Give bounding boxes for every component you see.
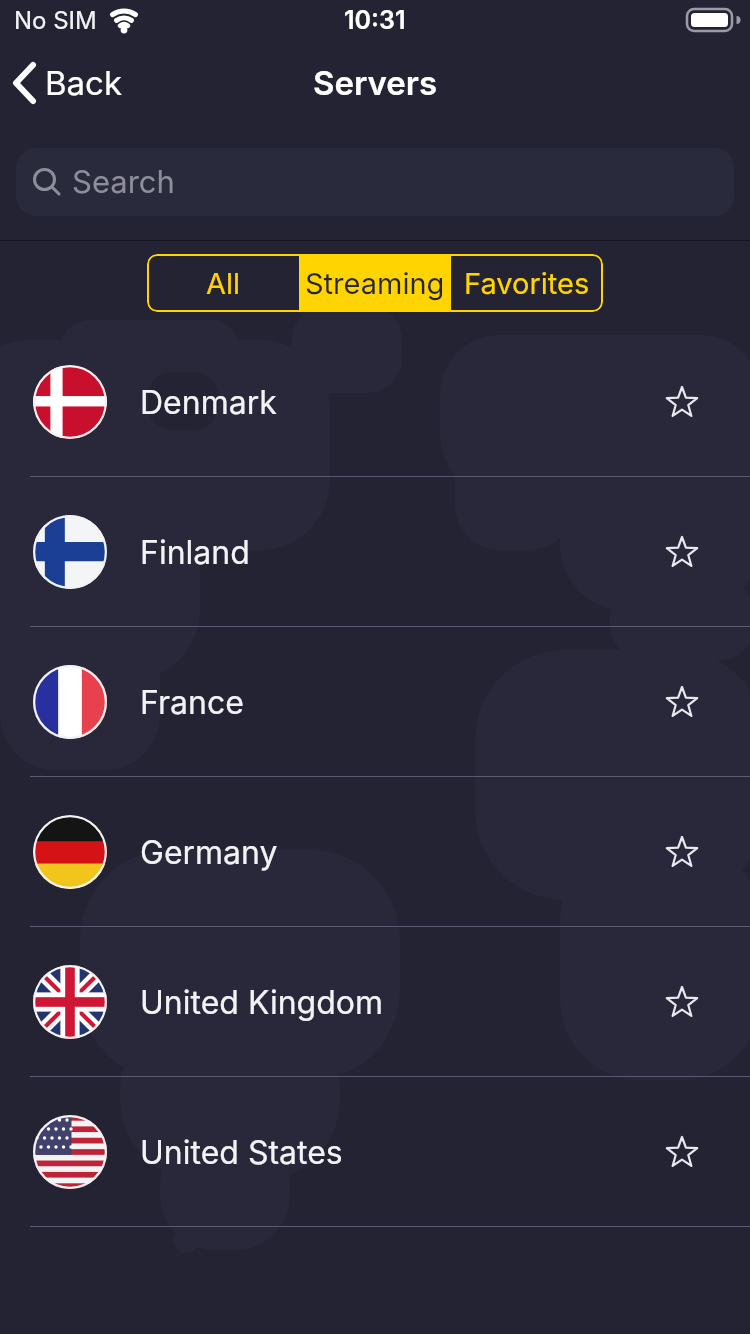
staticText: All xyxy=(206,266,241,301)
button[interactable] xyxy=(666,686,698,718)
staticText: 10:31 xyxy=(344,5,406,35)
staticText: Germany xyxy=(140,833,278,872)
button[interactable] xyxy=(666,1136,698,1168)
button[interactable]: Favorites xyxy=(451,254,603,312)
staticText: No SIM xyxy=(14,6,97,35)
button[interactable]: United Kingdom xyxy=(0,927,750,1077)
button[interactable]: United States xyxy=(0,1077,750,1227)
staticText: France xyxy=(140,683,244,722)
button[interactable]: Denmark xyxy=(0,327,750,477)
staticText: Favorites xyxy=(464,266,590,301)
staticText: Servers xyxy=(313,63,438,103)
staticText: Back xyxy=(45,63,123,103)
button[interactable]: Search xyxy=(16,148,734,216)
button[interactable]: All xyxy=(147,254,299,312)
button[interactable] xyxy=(666,536,698,568)
button[interactable]: Back xyxy=(12,62,123,104)
button[interactable]: Germany xyxy=(0,777,750,927)
staticText: Search xyxy=(72,163,175,201)
button[interactable]: Finland xyxy=(0,477,750,627)
staticText: Finland xyxy=(140,533,250,572)
staticText: Streaming xyxy=(305,266,445,301)
staticText: United States xyxy=(140,1133,343,1172)
staticText: United Kingdom xyxy=(140,983,383,1022)
button[interactable] xyxy=(666,386,698,418)
button[interactable] xyxy=(666,836,698,868)
button[interactable]: Streaming xyxy=(299,254,451,312)
staticText: Denmark xyxy=(140,383,277,422)
button[interactable] xyxy=(666,986,698,1018)
button[interactable]: France xyxy=(0,627,750,777)
